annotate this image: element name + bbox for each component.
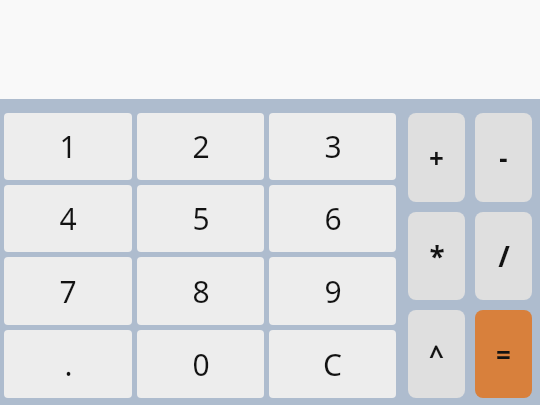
button[interactable]: .	[4, 330, 132, 398]
staticText: -	[499, 140, 508, 175]
staticText: 3	[324, 126, 342, 167]
staticText: *	[429, 237, 445, 275]
button[interactable]: 8	[137, 257, 264, 325]
staticText: 4	[59, 198, 77, 239]
button[interactable]: Plus	[408, 113, 465, 202]
button[interactable]: C	[269, 330, 396, 398]
staticText: 9	[324, 271, 342, 312]
staticText: 2	[192, 126, 210, 167]
staticText: 7	[59, 271, 77, 312]
button[interactable]: Minus	[475, 113, 532, 202]
staticText: 5	[192, 198, 210, 239]
button[interactable]: Divide	[475, 212, 532, 300]
button[interactable]: 1	[4, 113, 132, 180]
staticText: C	[323, 344, 342, 385]
button[interactable]: Equals	[475, 310, 532, 398]
button[interactable]: 4	[4, 185, 132, 252]
button[interactable]: 2	[137, 113, 264, 180]
staticText: 1	[59, 126, 77, 167]
staticText: =	[496, 337, 511, 372]
staticText: .	[64, 344, 73, 385]
button[interactable]: Power	[408, 310, 465, 398]
staticText: 6	[324, 198, 342, 239]
button[interactable]: 0	[137, 330, 264, 398]
staticText: /	[498, 237, 510, 275]
staticText: ^	[429, 337, 444, 372]
button[interactable]: 3	[269, 113, 396, 180]
staticText: +	[429, 140, 444, 175]
button[interactable]: 6	[269, 185, 396, 252]
staticText: 8	[192, 271, 210, 312]
button[interactable]: Multiply	[408, 212, 465, 300]
button[interactable]: 5	[137, 185, 264, 252]
button[interactable]: 9	[269, 257, 396, 325]
staticText: 0	[192, 344, 210, 385]
button[interactable]: 7	[4, 257, 132, 325]
